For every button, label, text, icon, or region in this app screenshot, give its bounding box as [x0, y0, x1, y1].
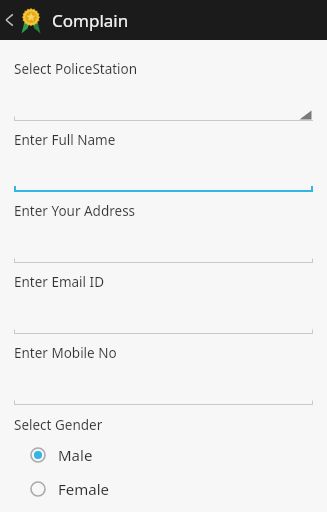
button[interactable]: Female	[14, 472, 313, 506]
button[interactable]: Enter Full Name	[14, 131, 313, 192]
staticText: Enter Your Address	[14, 202, 136, 220]
button[interactable]: Enter Your Address	[14, 202, 313, 263]
staticText: Male	[58, 445, 93, 465]
button[interactable]: Enter Mobile No	[14, 344, 313, 405]
button[interactable]: Male	[14, 438, 313, 472]
staticText: Enter Full Name	[14, 131, 116, 149]
staticText: Enter Mobile No	[14, 344, 117, 362]
staticText: Female	[58, 479, 110, 499]
staticText: Select PoliceStation	[14, 60, 138, 78]
button[interactable]: Navigate up	[0, 6, 327, 34]
button[interactable]: Select PoliceStation	[14, 60, 313, 121]
staticText: Select Gender	[14, 416, 103, 434]
staticText: Enter Email ID	[14, 273, 105, 291]
button[interactable]: Enter Email ID	[14, 273, 313, 334]
staticText: Complain	[52, 9, 129, 32]
